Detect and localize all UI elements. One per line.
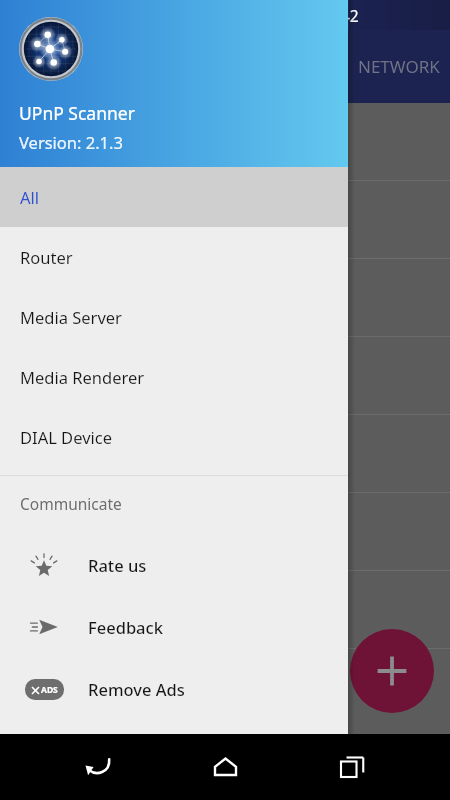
button[interactable] [0,259,450,337]
staticText: ADS [41,684,58,696]
staticText: All [20,186,40,208]
staticText: Rate us [88,554,147,576]
button[interactable]: Rate us [0,534,348,596]
button[interactable]: Media Server [0,287,348,347]
button[interactable]: All [0,167,348,227]
button[interactable]: DIAL Device [0,407,348,467]
staticText: Communicate [20,493,122,514]
button[interactable]: Add device [350,629,434,713]
button[interactable]: Home [196,738,254,796]
button[interactable]: Router [0,227,348,287]
button[interactable]: ADS [0,658,348,720]
button[interactable] [0,103,450,181]
staticText: Router [20,246,73,268]
button[interactable] [0,415,450,493]
button[interactable] [0,571,450,649]
staticText: Version: 2.1.3 [19,131,123,153]
staticText: Remove Ads [88,678,185,700]
button[interactable]: Back [69,738,127,796]
staticText: Media Server [20,306,122,328]
button[interactable]: Media Renderer [0,347,348,407]
button[interactable] [0,337,450,415]
button[interactable]: Feedback [0,596,348,658]
staticText: Feedback [88,616,163,638]
staticText: Media Renderer [20,366,145,388]
button[interactable]: Recent apps [323,738,381,796]
staticText: NETWORK [358,55,440,78]
staticText: UPnP Scanner [19,101,135,125]
staticText: 11:42 [319,5,359,26]
staticText: DIAL Device [20,426,113,448]
button[interactable] [0,181,450,259]
button[interactable] [0,493,450,571]
